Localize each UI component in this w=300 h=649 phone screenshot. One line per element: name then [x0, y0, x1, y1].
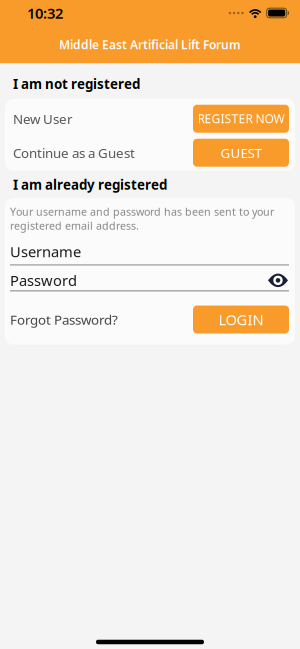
button[interactable]: REGISTER NOW: [193, 105, 289, 133]
button[interactable]: Forgot Password?: [10, 311, 118, 328]
staticText: Forgot Password?: [10, 311, 118, 328]
staticText: GUEST: [220, 144, 261, 162]
staticText: I am not registered: [13, 75, 140, 93]
staticText: Middle East Artificial Lift Forum: [59, 36, 241, 52]
staticText: Continue as a Guest: [13, 144, 135, 162]
staticText: I am already registered: [13, 176, 167, 193]
staticText: LOGIN: [218, 310, 263, 329]
button[interactable]: GUEST: [193, 139, 289, 167]
staticText: REGISTER NOW: [197, 111, 284, 127]
button[interactable]: LOGIN: [193, 305, 289, 333]
staticText: Your username and password has been sent…: [10, 204, 274, 219]
staticText: New User: [13, 110, 73, 128]
staticText: registered email address.: [10, 219, 139, 233]
staticText: Password: [10, 271, 77, 290]
staticText: 10:32: [27, 3, 63, 23]
staticText: Username: [10, 242, 81, 261]
button[interactable]: [268, 273, 288, 288]
